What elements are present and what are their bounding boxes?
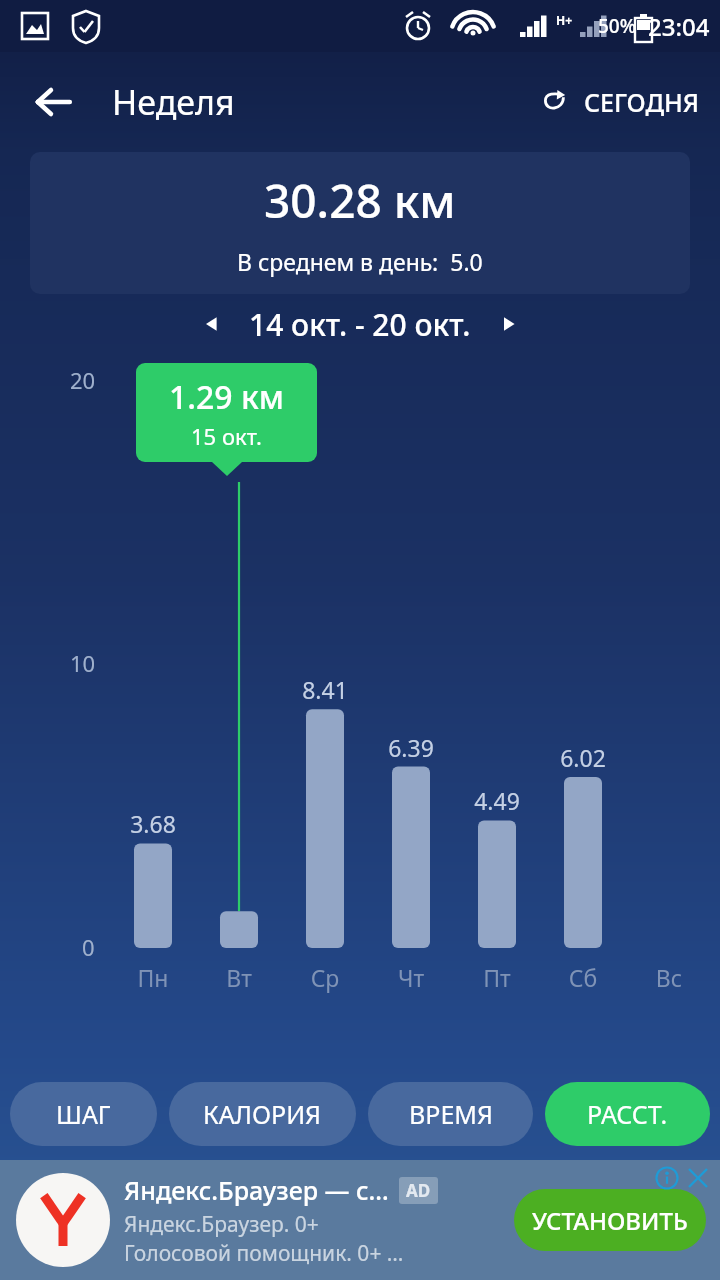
staticText: 0 xyxy=(82,932,95,962)
staticText: 6.02 xyxy=(546,742,620,773)
staticText: H+ xyxy=(556,12,573,28)
button[interactable]: КАЛОРИЯ xyxy=(169,1082,356,1146)
staticText: 50% xyxy=(598,13,636,39)
staticText: Неделя xyxy=(112,79,235,125)
staticText: Яндекс.Браузер — с… xyxy=(124,1173,389,1207)
button[interactable]: Back xyxy=(20,69,86,135)
staticText: Пт xyxy=(462,962,532,993)
staticText: Чт xyxy=(376,962,446,993)
staticText: Вт xyxy=(204,962,274,993)
staticText: 20 xyxy=(70,365,96,395)
staticText: Ср xyxy=(290,962,360,993)
staticText: 14 окт. - 20 окт. xyxy=(249,304,471,345)
button[interactable]: Close ad xyxy=(682,1162,714,1194)
staticText: КАЛОРИЯ xyxy=(203,1097,322,1131)
staticText: ШАГ xyxy=(56,1097,111,1131)
button[interactable]: 30.28 км xyxy=(30,152,690,294)
staticText: AD xyxy=(406,1179,431,1202)
staticText: 3.68 xyxy=(116,808,190,839)
staticText: УСТАНОВИТЬ xyxy=(532,1204,688,1237)
staticText: Голосовой помощник. 0+ … xyxy=(124,1239,404,1268)
staticText: Пн xyxy=(118,962,188,993)
staticText: Вс xyxy=(634,962,704,993)
button[interactable]: Ad info xyxy=(652,1163,682,1193)
button[interactable]: УСТАНОВИТЬ xyxy=(514,1189,706,1251)
staticText: 15 окт. xyxy=(191,421,262,451)
button[interactable]: Next week xyxy=(485,300,533,348)
staticText: СЕГОДНЯ xyxy=(584,85,700,119)
staticText: ВРЕМЯ xyxy=(409,1097,493,1131)
button[interactable]: ШАГ xyxy=(10,1082,157,1146)
button[interactable]: Previous week xyxy=(187,300,235,348)
staticText: Яндекс.Браузер. 0+ xyxy=(124,1210,319,1239)
staticText: 10 xyxy=(70,648,96,678)
staticText: 6.39 xyxy=(374,732,448,763)
staticText: РАССТ. xyxy=(587,1097,668,1131)
button[interactable]: РАССТ. xyxy=(545,1082,710,1146)
staticText: 1.29 км xyxy=(169,375,284,419)
staticText: В среднем в день: 5.0 xyxy=(237,246,483,277)
staticText: 30.28 км xyxy=(264,169,456,232)
button[interactable]: 1.29 км xyxy=(136,363,317,462)
button[interactable]: ВРЕМЯ xyxy=(368,1082,533,1146)
staticText: 8.41 xyxy=(288,674,362,705)
staticText: Сб xyxy=(548,962,618,993)
staticText: 23:04 xyxy=(648,10,710,43)
staticText: 4.49 xyxy=(460,785,534,816)
button[interactable]: СЕГОДНЯ xyxy=(534,75,706,129)
